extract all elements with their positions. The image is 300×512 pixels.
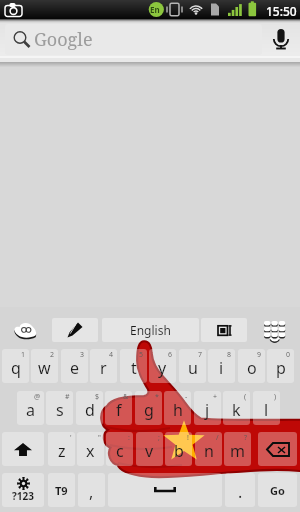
staticText: @	[34, 392, 41, 402]
button[interactable]: l	[253, 391, 280, 425]
staticText: 7	[198, 350, 203, 360]
staticText: 15:50	[266, 3, 297, 19]
staticText: h	[173, 399, 183, 421]
button[interactable]: y	[149, 349, 176, 383]
staticText: m	[230, 440, 245, 462]
staticText: 8	[227, 350, 232, 360]
staticText: En	[150, 4, 160, 15]
staticText: i	[219, 357, 224, 379]
button[interactable]: w	[31, 349, 58, 383]
staticText: x	[86, 440, 95, 462]
staticText: q	[11, 357, 21, 379]
staticText: #	[65, 392, 70, 402]
staticText: n	[204, 440, 214, 462]
button[interactable]: .	[225, 473, 255, 507]
staticText: 5	[139, 350, 144, 360]
staticText: ,	[89, 481, 94, 503]
staticText: 1	[21, 350, 26, 360]
staticText: o	[247, 357, 257, 379]
button[interactable]: Voice input	[13, 321, 38, 338]
button[interactable]: x	[77, 432, 104, 466]
staticText: T9	[55, 483, 68, 498]
staticText: e	[70, 357, 80, 379]
staticText: ;	[158, 433, 160, 443]
staticText: c	[116, 440, 124, 462]
button[interactable]: shift	[2, 432, 44, 466]
button[interactable]: e	[61, 349, 88, 383]
button[interactable]: Hide keyboard	[264, 321, 286, 339]
button[interactable]: n	[195, 432, 222, 466]
staticText: "	[98, 433, 101, 443]
button[interactable]: t	[120, 349, 147, 383]
staticText: f	[116, 399, 122, 421]
staticText: .	[238, 481, 243, 503]
button[interactable]: u	[179, 349, 206, 383]
staticText: w	[38, 357, 51, 379]
staticText: +	[213, 392, 218, 402]
button[interactable]: ,	[78, 473, 105, 507]
staticText: '	[70, 433, 72, 443]
staticText: y	[158, 357, 167, 379]
button[interactable]: T9	[48, 473, 75, 507]
button[interactable]: English	[102, 318, 199, 342]
staticText: k	[232, 399, 241, 421]
button[interactable]: o	[238, 349, 265, 383]
staticText: 3	[80, 350, 85, 360]
button[interactable]: c	[106, 432, 133, 466]
staticText: a	[26, 399, 35, 421]
button[interactable]: h	[164, 391, 191, 425]
button[interactable]: g	[135, 391, 162, 425]
button[interactable]: z	[48, 432, 75, 466]
staticText: /	[216, 433, 219, 443]
staticText: Go	[270, 483, 285, 498]
staticText: r	[100, 357, 107, 379]
button[interactable]: layout	[201, 318, 247, 342]
staticText: ?	[244, 433, 248, 443]
staticText: p	[276, 357, 286, 379]
staticText: )	[274, 392, 277, 402]
staticText: 0	[286, 350, 291, 360]
button[interactable]: k	[223, 391, 250, 425]
button[interactable]: r	[90, 349, 117, 383]
staticText: 9	[257, 350, 262, 360]
button[interactable]: v	[136, 432, 163, 466]
button[interactable]: m	[224, 432, 251, 466]
staticText: 4	[109, 350, 114, 360]
staticText: $	[95, 392, 100, 402]
staticText: t	[131, 357, 137, 379]
staticText: 6	[168, 350, 173, 360]
staticText: s	[56, 399, 64, 421]
staticText: -	[185, 392, 188, 402]
button[interactable]: pencil	[52, 318, 98, 342]
staticText: z	[58, 440, 66, 462]
staticText: d	[85, 399, 95, 421]
staticText: (	[244, 392, 247, 402]
button[interactable]: f	[105, 391, 132, 425]
staticText: :	[128, 433, 130, 443]
staticText: u	[188, 357, 198, 379]
staticText: j	[205, 399, 210, 421]
button[interactable]: s	[46, 391, 73, 425]
button[interactable]: j	[194, 391, 221, 425]
button[interactable]: a	[17, 391, 44, 425]
staticText: l	[264, 399, 269, 421]
staticText: ?123	[12, 489, 34, 503]
staticText: 2	[50, 350, 55, 360]
button[interactable]: Go	[258, 473, 297, 507]
button[interactable]: q	[2, 349, 29, 383]
staticText: !	[187, 433, 189, 443]
staticText: English	[130, 322, 171, 338]
button[interactable]: Voice search	[262, 19, 300, 58]
button[interactable]: b	[165, 432, 192, 466]
button[interactable]: Google	[5, 24, 262, 55]
button[interactable]: i	[208, 349, 235, 383]
staticText: *	[155, 392, 159, 402]
button[interactable]: d	[76, 391, 103, 425]
button[interactable]: ?123	[2, 473, 44, 507]
staticText: b	[174, 440, 184, 462]
staticText: Google	[34, 27, 93, 52]
staticText: g	[144, 399, 154, 421]
button[interactable]: back	[258, 432, 297, 466]
button[interactable]: space	[108, 473, 222, 507]
button[interactable]: p	[267, 349, 294, 383]
